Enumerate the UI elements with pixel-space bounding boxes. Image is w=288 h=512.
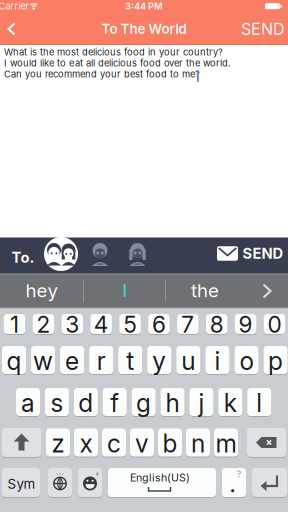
staticText: 6	[152, 311, 166, 338]
staticText: a	[21, 388, 35, 418]
staticText: m	[215, 429, 236, 458]
staticText: b	[162, 429, 177, 458]
staticText: k	[224, 388, 237, 418]
staticText: What is the most delicious food in your …	[4, 46, 223, 58]
staticText: ?	[236, 468, 241, 480]
staticText: s	[50, 388, 63, 418]
staticText: p	[268, 346, 283, 376]
staticText: y	[152, 346, 166, 376]
staticText: 7	[181, 311, 194, 338]
staticText: v	[135, 429, 149, 458]
staticText: 8	[210, 311, 224, 338]
staticText: the	[191, 279, 219, 302]
staticText: i	[214, 346, 220, 376]
staticText: d	[78, 388, 93, 418]
staticText: u	[181, 346, 195, 376]
staticText: I would like to eat all delicious food o…	[4, 57, 231, 69]
staticText: 3	[65, 311, 79, 338]
staticText: w	[33, 346, 53, 376]
staticText: n	[191, 429, 205, 458]
staticText: Sym	[7, 476, 35, 492]
staticText: f	[110, 388, 119, 418]
staticText: e	[65, 346, 79, 376]
staticText: 9	[239, 311, 253, 338]
staticText: g	[136, 388, 151, 418]
staticText: To.	[11, 249, 34, 266]
staticText: z	[51, 429, 64, 458]
staticText: 3:44 PM	[125, 0, 163, 12]
staticText: 5	[124, 311, 137, 338]
staticText: To The World	[101, 21, 186, 37]
staticText: SEND	[241, 19, 285, 39]
staticText: Can you recommend your best food to me?	[4, 68, 200, 80]
staticText: t	[126, 346, 134, 376]
staticText: q	[6, 346, 21, 376]
staticText: hey	[25, 279, 57, 302]
staticText: .	[229, 474, 235, 497]
staticText: r	[97, 346, 106, 376]
staticText: 0	[267, 311, 281, 338]
staticText: English(US)	[130, 471, 190, 484]
staticText: 2	[36, 311, 50, 338]
staticText: j	[198, 388, 204, 418]
staticText: x	[79, 429, 92, 458]
staticText: 4	[94, 311, 109, 338]
staticText: 1	[10, 311, 19, 338]
staticText: c	[107, 429, 121, 458]
staticText: h	[165, 388, 179, 418]
staticText: Carrier	[0, 0, 29, 12]
staticText: SEND	[242, 245, 283, 262]
staticText: o	[239, 346, 253, 376]
staticText: l	[256, 388, 262, 418]
